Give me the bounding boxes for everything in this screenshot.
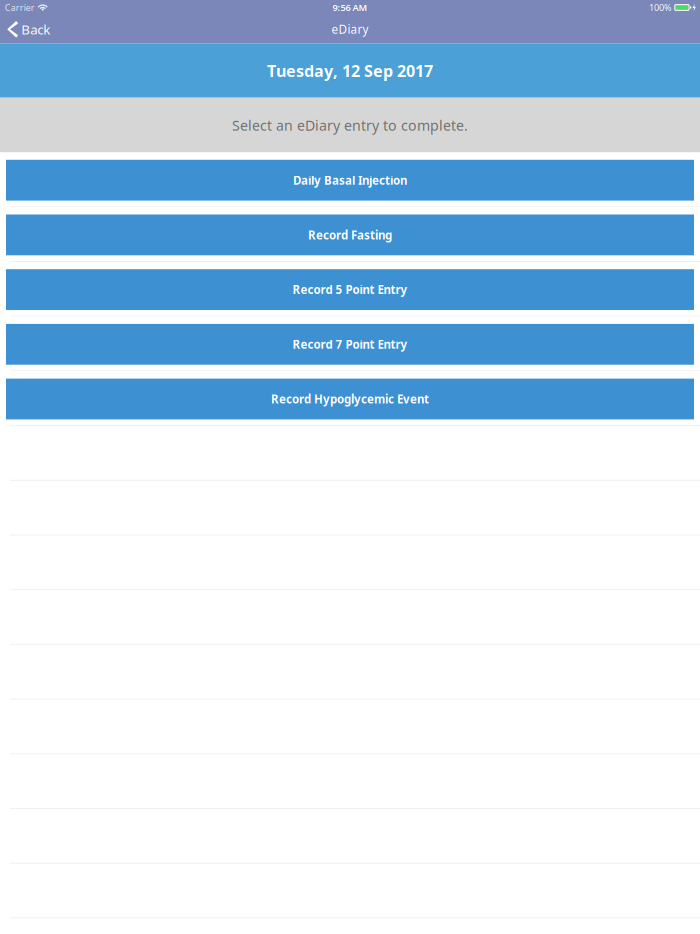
staticText: Select an eDiary entry to complete. bbox=[232, 115, 468, 135]
staticText: Tuesday, 12 Sep 2017 bbox=[267, 60, 433, 82]
staticText: 100% bbox=[649, 1, 672, 14]
staticText: Daily Basal Injection bbox=[293, 172, 407, 188]
button[interactable]: Record 7 Point Entry bbox=[0, 324, 700, 365]
button[interactable]: Back bbox=[0, 15, 61, 44]
staticText: Carrier bbox=[5, 1, 35, 13]
staticText: Record 5 Point Entry bbox=[292, 282, 407, 297]
staticText: Back bbox=[21, 20, 50, 38]
button[interactable]: Record Hypoglycemic Event bbox=[0, 379, 700, 419]
staticText: Record Hypoglycemic Event bbox=[271, 391, 429, 407]
staticText: Record Fasting bbox=[308, 227, 392, 243]
button[interactable]: Daily Basal Injection bbox=[0, 160, 700, 201]
button[interactable]: Record Fasting bbox=[0, 214, 700, 255]
staticText: 9:56 AM bbox=[332, 1, 367, 14]
staticText: eDiary bbox=[331, 21, 368, 37]
staticText: Record 7 Point Entry bbox=[292, 336, 407, 352]
button[interactable]: Record 5 Point Entry bbox=[0, 269, 700, 310]
